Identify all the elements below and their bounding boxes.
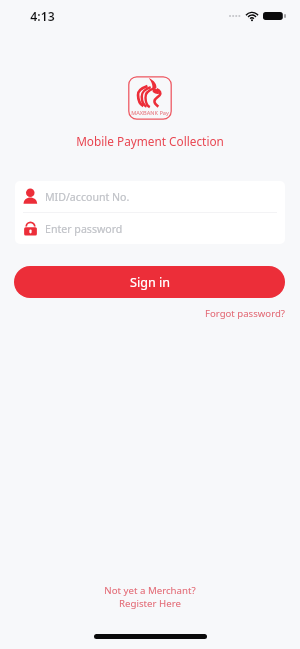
staticText: Mobile Payment Collection — [76, 133, 224, 149]
staticText: Enter password — [45, 222, 123, 236]
staticText: MAXBANK Pay — [131, 109, 169, 117]
other: Password — [23, 221, 38, 236]
staticText: Forgot password? — [205, 307, 285, 320]
staticText: 4:13 — [30, 8, 55, 25]
staticText: Sign in — [130, 274, 170, 291]
button[interactable]: Forgot password? — [205, 304, 300, 323]
other: Account — [23, 189, 38, 204]
button[interactable]: Password — [15, 213, 285, 244]
button[interactable]: Sign in — [14, 266, 285, 298]
button[interactable]: Account — [15, 181, 285, 212]
button[interactable]: Not yet a Merchant? — [0, 584, 300, 610]
staticText: Register Here — [119, 597, 181, 610]
staticText: MID/account No. — [45, 190, 130, 204]
staticText: Not yet a Merchant? — [104, 584, 196, 597]
